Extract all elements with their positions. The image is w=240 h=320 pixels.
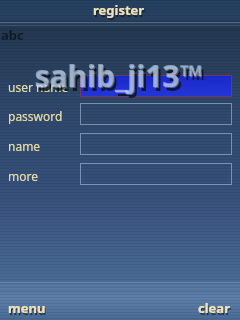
button[interactable]: password — [80, 103, 232, 125]
button[interactable] — [170, 298, 240, 320]
button[interactable]: more — [80, 163, 232, 185]
button[interactable]: user name — [80, 75, 232, 97]
button[interactable] — [0, 298, 70, 320]
button[interactable]: name — [80, 133, 232, 155]
